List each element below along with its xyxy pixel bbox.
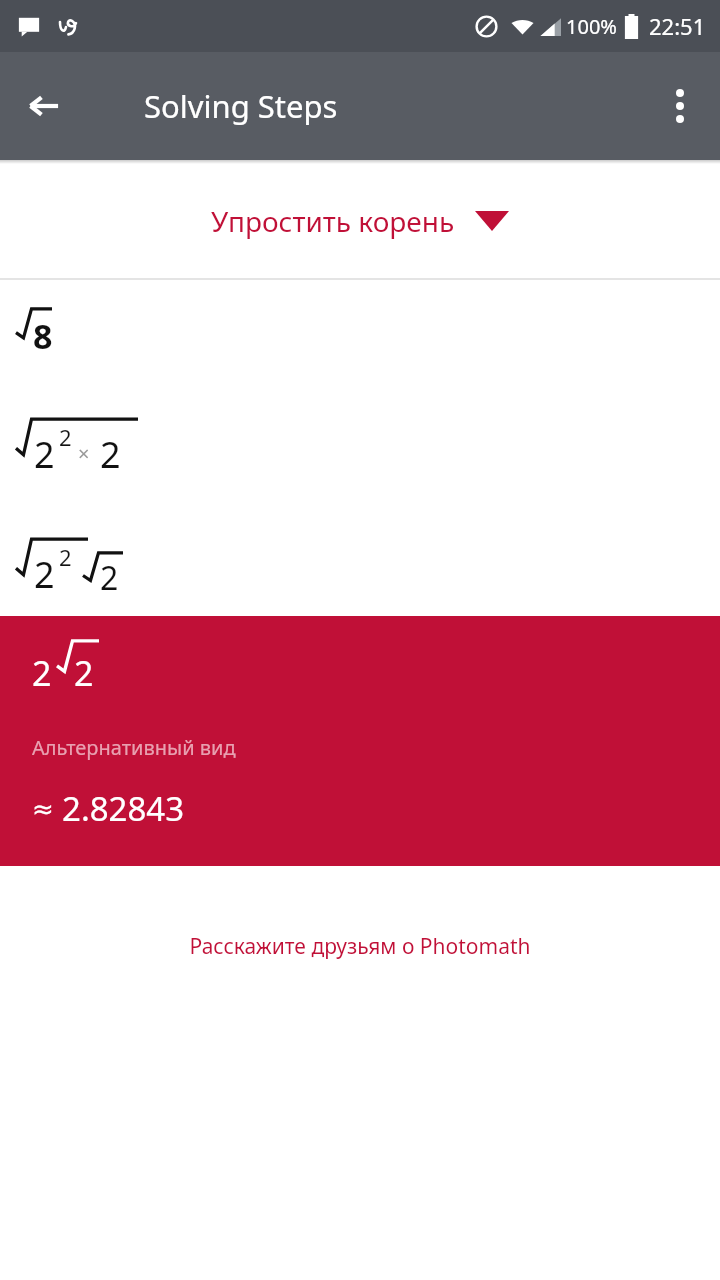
staticText: 8 [33,313,53,359]
button[interactable]: Упростить корень [0,164,720,278]
staticText: 2 [34,550,55,599]
staticText: 2 [59,542,72,572]
staticText: 2 [59,422,72,452]
button[interactable]: 2 [0,616,720,866]
staticText: 2 [32,650,52,696]
staticText: Расскажите друзьям о Photomath [189,932,531,961]
button[interactable]: Back [16,78,72,134]
staticText: 2.82843 [62,786,185,831]
staticText: Альтернативный вид [32,734,236,761]
staticText: 100% [566,13,617,40]
button[interactable]: More options [654,80,706,132]
staticText: 2 [100,430,121,479]
staticText: Упростить корень [211,202,455,240]
staticText: ≈ [32,794,54,824]
staticText: 2 [34,430,55,479]
staticText: 2 [74,650,94,696]
staticText: 2 [100,556,119,600]
staticText: 22:51 [649,11,706,41]
staticText: Solving Steps [144,85,338,127]
staticText: × [78,440,90,467]
button[interactable]: Расскажите друзьям о Photomath [0,922,720,971]
